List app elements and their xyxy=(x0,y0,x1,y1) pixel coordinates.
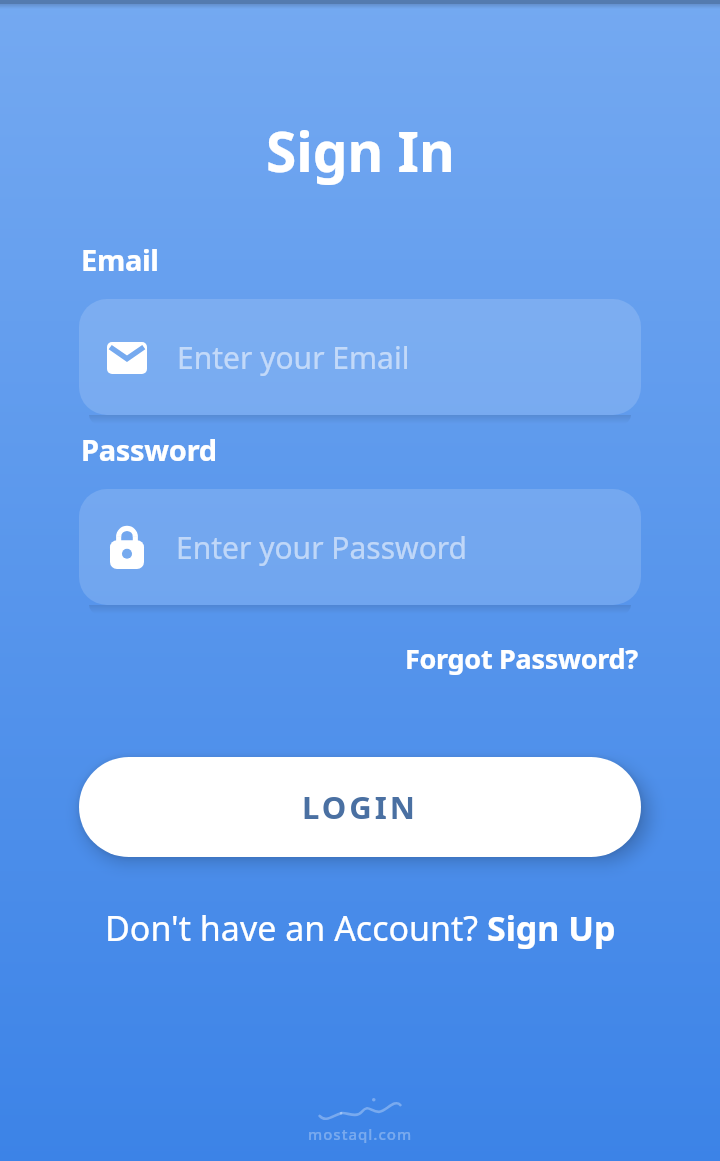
staticText: Password xyxy=(81,430,217,469)
staticText: Enter your Email xyxy=(177,337,410,378)
staticText: Enter your Password xyxy=(176,527,468,568)
button[interactable]: Enter your Password xyxy=(79,489,641,605)
button[interactable]: Forgot Password? xyxy=(405,640,638,677)
button[interactable]: Enter your Email xyxy=(79,299,641,415)
staticText: Email xyxy=(81,240,159,279)
button[interactable]: Don't have an Account? Sign Up xyxy=(105,905,616,951)
staticText: mostaql.com xyxy=(308,1124,413,1144)
button[interactable]: LOGIN xyxy=(79,757,641,857)
staticText: Sign In xyxy=(266,113,455,188)
staticText: LOGIN xyxy=(302,786,418,828)
